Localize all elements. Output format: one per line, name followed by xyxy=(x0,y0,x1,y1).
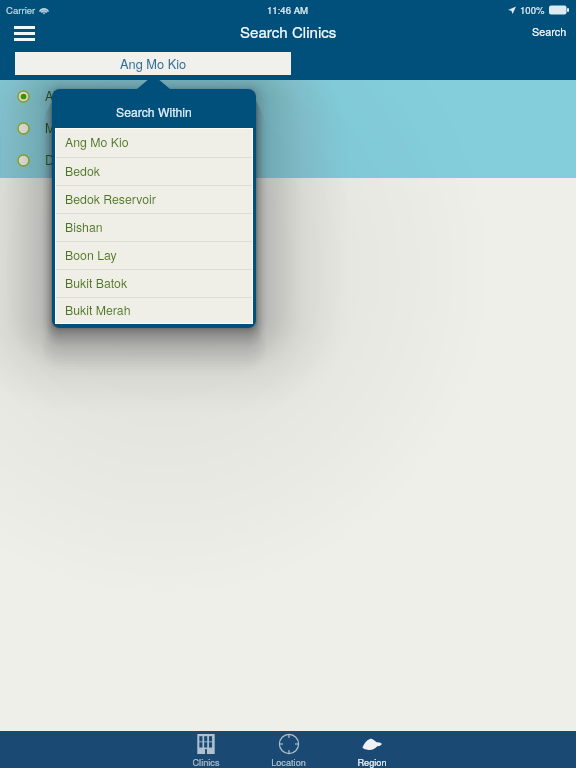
button[interactable]: Bukit Batok xyxy=(56,270,252,297)
staticText: Ang Mo Kio xyxy=(65,133,129,151)
staticText: Bedok Reservoir xyxy=(65,190,156,208)
button[interactable]: Location xyxy=(247,731,330,768)
button[interactable]: Clinics xyxy=(164,731,247,768)
button[interactable]: Region xyxy=(330,731,413,768)
button[interactable]: Boon Lay xyxy=(56,242,252,269)
button[interactable]: Ang Mo Kio xyxy=(56,129,252,157)
button[interactable]: Bedok Reservoir xyxy=(56,186,252,213)
staticText: MOH xyxy=(45,119,75,137)
staticText: Bukit Merah xyxy=(65,301,131,319)
staticText: Bishan xyxy=(65,218,103,236)
staticText: Boon Lay xyxy=(65,246,117,264)
staticText: Dental xyxy=(45,151,82,169)
staticText: Search xyxy=(532,24,567,39)
button[interactable]: Open navigation menu xyxy=(6,16,40,48)
button[interactable]: Dental xyxy=(0,144,576,176)
staticText: Search Within xyxy=(116,103,192,120)
button[interactable]: Search xyxy=(532,24,567,39)
staticText: Bukit Batok xyxy=(65,274,128,292)
button[interactable]: Bedok xyxy=(56,158,252,185)
button[interactable]: Ang Mo Kio xyxy=(15,52,291,75)
staticText: 100% xyxy=(520,3,545,17)
staticText: Bedok xyxy=(65,162,100,180)
button[interactable]: All xyxy=(0,80,576,112)
staticText: Search Clinics xyxy=(240,21,337,43)
staticText: Location xyxy=(271,755,306,768)
staticText: Region xyxy=(357,755,387,768)
staticText: Clinics xyxy=(192,755,220,768)
staticText: 11:46 AM xyxy=(267,3,309,17)
button[interactable]: Bukit Merah xyxy=(56,298,252,323)
button[interactable]: MOH xyxy=(0,112,576,144)
button[interactable]: Bishan xyxy=(56,214,252,241)
staticText: Carrier xyxy=(6,3,36,17)
staticText: Ang Mo Kio xyxy=(120,54,187,72)
staticText: All xyxy=(45,87,59,105)
